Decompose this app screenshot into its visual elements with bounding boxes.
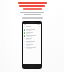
button[interactable]: [23, 31, 41, 34]
button[interactable]: [23, 28, 41, 31]
button[interactable]: [23, 40, 41, 43]
button[interactable]: [23, 37, 41, 40]
button[interactable]: [23, 43, 41, 46]
button[interactable]: [23, 46, 41, 49]
button[interactable]: [23, 34, 41, 37]
button[interactable]: Menu: [23, 25, 41, 28]
button[interactable]: Get started: [22, 17, 43, 19]
